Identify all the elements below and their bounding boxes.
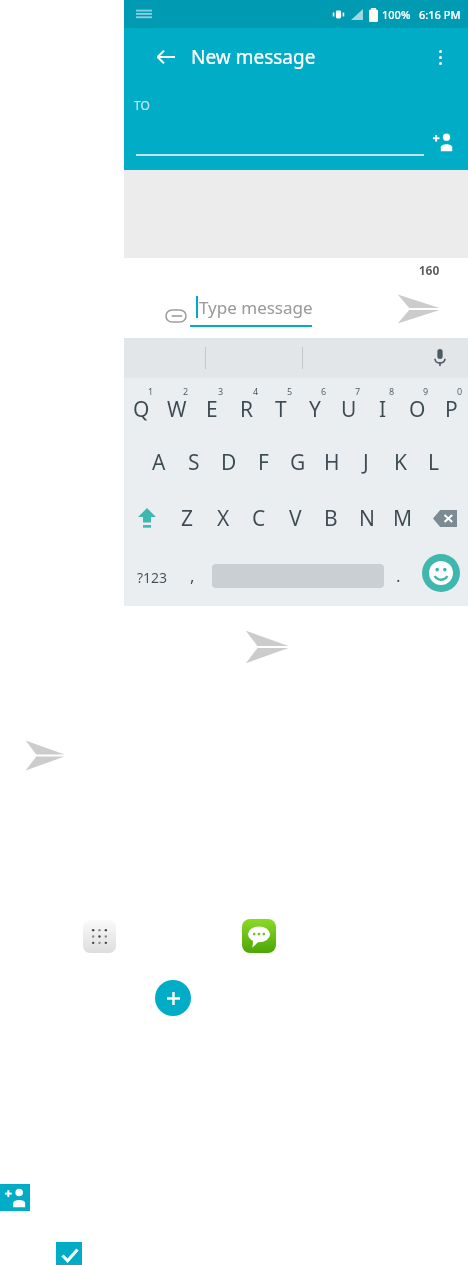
button[interactable]: Delete [421, 490, 468, 546]
button[interactable]: Attach [160, 300, 192, 332]
staticText: N [359, 504, 375, 533]
button[interactable]: 1 [124, 378, 159, 434]
staticText: G [290, 448, 306, 477]
button[interactable]: N [349, 490, 385, 546]
staticText: 5 [287, 385, 293, 397]
staticText: 8 [389, 385, 395, 397]
button[interactable]: 4 [229, 378, 264, 434]
button[interactable]: Z [170, 490, 205, 546]
staticText: 160 [404, 262, 454, 278]
staticText: 4 [253, 385, 259, 397]
button[interactable]: Emoji [422, 554, 460, 592]
staticText: K [394, 448, 407, 477]
staticText: Z [181, 504, 194, 533]
staticText: 1 [148, 385, 154, 397]
staticText: J [363, 448, 369, 477]
button[interactable]: , [190, 564, 195, 587]
button[interactable]: 3 [194, 378, 229, 434]
button[interactable]: B [313, 490, 349, 546]
staticText: Type message [199, 296, 313, 319]
button[interactable]: Compose [155, 980, 191, 1016]
button[interactable]: 0 [434, 378, 468, 434]
staticText: 100% [382, 7, 411, 22]
staticText: 0 [457, 385, 463, 397]
staticText: 6 [321, 385, 327, 397]
button[interactable]: Send [24, 740, 65, 771]
button[interactable]: . [396, 564, 401, 587]
button[interactable]: D [211, 434, 246, 490]
staticText: C [252, 504, 266, 533]
button[interactable]: Send [244, 630, 289, 664]
staticText: I [379, 395, 387, 424]
button[interactable]: 6 [298, 378, 332, 434]
button[interactable]: Send [396, 294, 440, 324]
button[interactable]: J [349, 434, 383, 490]
button[interactable]: Messaging [242, 919, 276, 953]
staticText: M [393, 504, 413, 533]
staticText: A [152, 448, 166, 477]
staticText: T [275, 395, 287, 424]
button[interactable]: Shift [124, 490, 170, 546]
staticText: Y [309, 395, 321, 424]
button[interactable]: 5 [264, 378, 298, 434]
staticText: W [167, 395, 187, 424]
button[interactable]: C [241, 490, 277, 546]
button[interactable]: X [205, 490, 241, 546]
button[interactable]: Add contact [0, 1184, 30, 1211]
button[interactable]: More options [420, 37, 460, 77]
staticText: 2 [183, 385, 189, 397]
staticText: V [289, 504, 302, 533]
button[interactable]: 2 [159, 378, 194, 434]
button[interactable]: M [385, 490, 421, 546]
button[interactable]: F [246, 434, 281, 490]
button[interactable]: 8 [366, 378, 400, 434]
staticText: 7 [355, 385, 361, 397]
staticText: New message [191, 44, 316, 70]
button[interactable]: Add recipient [426, 125, 460, 159]
button[interactable]: Apps [83, 920, 116, 953]
button[interactable]: L [417, 434, 451, 490]
staticText: F [258, 448, 269, 477]
staticText: R [240, 395, 254, 424]
button[interactable]: Done [56, 1242, 82, 1265]
button[interactable]: Back [142, 33, 190, 81]
button[interactable]: 9 [400, 378, 434, 434]
staticText: L [428, 448, 440, 477]
staticText: S [188, 448, 200, 477]
staticText: E [206, 395, 218, 424]
staticText: U [341, 395, 357, 424]
staticText: X [217, 504, 230, 533]
button[interactable]: G [281, 434, 315, 490]
staticText: O [409, 395, 426, 424]
button[interactable]: 7 [332, 378, 366, 434]
staticText: 9 [423, 385, 429, 397]
staticText: TO [134, 97, 150, 113]
staticText: B [324, 504, 338, 533]
staticText: 3 [218, 385, 224, 397]
staticText: H [324, 448, 340, 477]
button[interactable]: A [141, 434, 176, 490]
button[interactable]: ?123 [137, 568, 168, 587]
button[interactable]: K [383, 434, 417, 490]
staticText: D [221, 448, 237, 477]
staticText: 6:16 PM [419, 7, 461, 22]
button[interactable]: Voice input [426, 344, 454, 372]
button[interactable]: V [277, 490, 313, 546]
staticText: Q [133, 395, 150, 424]
staticText: P [445, 395, 458, 424]
button[interactable]: H [315, 434, 349, 490]
button[interactable]: S [176, 434, 211, 490]
